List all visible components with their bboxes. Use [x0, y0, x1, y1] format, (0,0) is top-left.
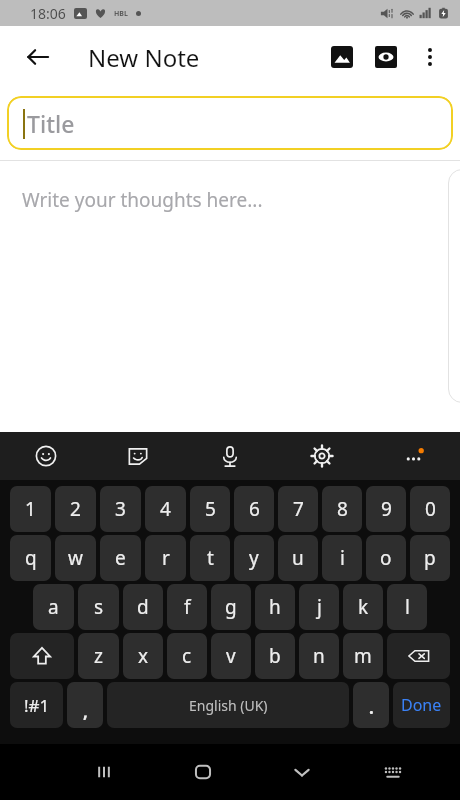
button[interactable]: e — [100, 535, 141, 581]
button[interactable]: Done — [393, 682, 450, 728]
staticText: 5 — [205, 496, 216, 522]
staticText: g — [225, 594, 237, 620]
staticText: h — [269, 594, 281, 620]
button[interactable]: Voice input — [184, 432, 276, 480]
button[interactable]: i — [322, 535, 362, 581]
staticText: j — [317, 594, 322, 620]
button[interactable]: Home — [153, 744, 252, 800]
button[interactable]: !#1 — [10, 682, 63, 728]
button[interactable]: Stickers — [92, 432, 184, 480]
staticText: 1 — [25, 496, 36, 522]
staticText: e — [115, 545, 126, 571]
staticText: x — [138, 643, 149, 669]
button[interactable]: Write your thoughts here... — [0, 161, 460, 432]
button[interactable]: Hide keyboard — [252, 744, 351, 800]
staticText: t — [207, 545, 214, 571]
button[interactable]: More — [368, 432, 460, 480]
button[interactable]: . — [353, 682, 389, 728]
button[interactable]: Back — [14, 33, 62, 81]
staticText: s — [94, 594, 104, 620]
staticText: i — [340, 545, 345, 571]
button[interactable]: v — [211, 633, 251, 679]
button[interactable]: 6 — [234, 486, 274, 532]
staticText: k — [358, 594, 369, 620]
staticText: p — [424, 545, 436, 571]
button[interactable]: j — [299, 584, 339, 630]
staticText: 9 — [381, 496, 392, 522]
staticText: r — [162, 545, 170, 571]
staticText: Title — [27, 108, 75, 139]
staticText: z — [94, 643, 103, 669]
button[interactable]: , — [67, 682, 103, 728]
staticText: c — [182, 643, 192, 669]
button[interactable]: y — [234, 535, 274, 581]
button[interactable]: English (UK) — [107, 682, 349, 728]
button[interactable]: m — [343, 633, 383, 679]
staticText: 4 — [160, 496, 171, 522]
button[interactable]: p — [410, 535, 450, 581]
button[interactable]: o — [366, 535, 406, 581]
button[interactable]: w — [55, 535, 96, 581]
button[interactable]: q — [10, 535, 51, 581]
staticText: y — [249, 545, 259, 571]
button[interactable]: Recent apps — [54, 744, 153, 800]
button[interactable]: h — [255, 584, 295, 630]
button[interactable]: x — [123, 633, 163, 679]
button[interactable]: 4 — [145, 486, 186, 532]
staticText: New Note — [88, 41, 200, 74]
button[interactable]: 7 — [278, 486, 318, 532]
button[interactable]: Insert image — [320, 35, 364, 79]
staticText: q — [25, 545, 37, 571]
button[interactable]: Backspace — [387, 633, 450, 679]
button[interactable]: Switch keyboard — [351, 744, 435, 800]
staticText: 6 — [249, 496, 260, 522]
button[interactable]: 2 — [55, 486, 96, 532]
staticText: 8 — [337, 496, 348, 522]
button[interactable]: g — [211, 584, 251, 630]
button[interactable]: c — [167, 633, 207, 679]
staticText: u — [292, 545, 304, 571]
staticText: f — [184, 594, 191, 620]
button[interactable]: Keyboard settings — [276, 432, 368, 480]
staticText: , — [83, 700, 88, 723]
staticText: Done — [401, 694, 442, 716]
button[interactable]: s — [78, 584, 119, 630]
button[interactable]: 5 — [190, 486, 230, 532]
staticText: l — [405, 594, 410, 620]
staticText: v — [226, 643, 236, 669]
button[interactable]: f — [167, 584, 207, 630]
button[interactable]: Shift — [10, 633, 74, 679]
staticText: English (UK) — [189, 696, 268, 715]
button[interactable]: 9 — [366, 486, 406, 532]
button[interactable]: u — [278, 535, 318, 581]
staticText: w — [68, 545, 83, 571]
button[interactable]: z — [78, 633, 119, 679]
button[interactable]: b — [255, 633, 295, 679]
button[interactable]: t — [190, 535, 230, 581]
staticText: o — [380, 545, 392, 571]
staticText: 3 — [115, 496, 126, 522]
staticText: 18:06 — [30, 4, 66, 23]
staticText: 2 — [70, 496, 81, 522]
button[interactable]: 8 — [322, 486, 362, 532]
button[interactable]: a — [33, 584, 74, 630]
staticText: d — [137, 594, 149, 620]
staticText: b — [269, 643, 281, 669]
staticText: !#1 — [24, 694, 50, 717]
button[interactable]: r — [145, 535, 186, 581]
button[interactable]: n — [299, 633, 339, 679]
staticText: HBL — [114, 9, 128, 19]
button[interactable]: Title — [7, 96, 453, 150]
button[interactable]: 1 — [10, 486, 51, 532]
button[interactable]: Emoji — [0, 432, 92, 480]
staticText: 0 — [425, 496, 436, 522]
button[interactable]: 0 — [410, 486, 450, 532]
button[interactable]: More options — [408, 35, 452, 79]
button[interactable]: 3 — [100, 486, 141, 532]
button[interactable]: d — [123, 584, 163, 630]
button[interactable]: k — [343, 584, 383, 630]
staticText: m — [354, 643, 372, 669]
button[interactable]: Preview — [364, 35, 408, 79]
button[interactable]: l — [387, 584, 427, 630]
staticText: n — [313, 643, 325, 669]
